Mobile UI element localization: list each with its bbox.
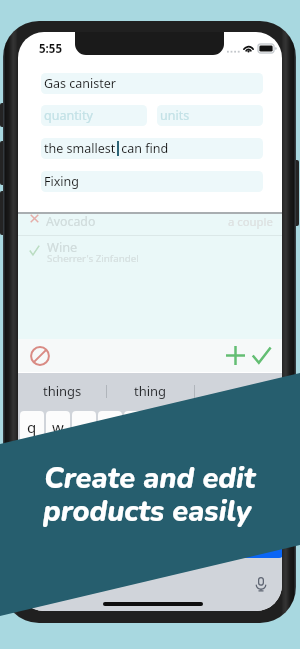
staticText: products easily	[43, 492, 252, 532]
staticText: n	[196, 495, 206, 515]
staticText: Create and edit	[44, 459, 256, 499]
staticText: d	[92, 456, 102, 476]
button[interactable]: units	[157, 105, 263, 126]
staticText: e	[80, 417, 89, 437]
button[interactable]: c	[111, 489, 135, 520]
button[interactable]: Confirm	[250, 339, 272, 372]
staticText: k	[223, 456, 232, 476]
button[interactable]: x	[85, 489, 109, 520]
button[interactable]: b	[163, 489, 187, 520]
staticText: x	[93, 495, 101, 515]
staticText: Fixing	[44, 173, 79, 190]
button[interactable]: h	[163, 450, 187, 481]
button[interactable]: f	[111, 450, 135, 481]
staticText: l	[251, 456, 255, 476]
button[interactable]: n	[189, 489, 213, 520]
button[interactable]: v	[137, 489, 161, 520]
button[interactable]: the smallest	[41, 138, 263, 159]
staticText: units	[160, 107, 190, 124]
staticText: m	[220, 495, 235, 515]
button[interactable]: j	[189, 450, 213, 481]
button[interactable]: e	[72, 411, 96, 442]
button[interactable]: things	[18, 376, 106, 406]
button[interactable]: Fixing	[41, 171, 263, 192]
staticText: g	[144, 456, 154, 476]
button[interactable]: Return	[229, 531, 282, 558]
button[interactable]: r	[98, 411, 122, 442]
button[interactable]: Wine	[18, 236, 282, 268]
staticText: thing	[134, 382, 167, 400]
staticText: f	[120, 456, 126, 476]
button[interactable]: g	[137, 450, 161, 481]
staticText: b	[170, 495, 180, 515]
button[interactable]: Add	[224, 339, 246, 372]
button[interactable]: d	[85, 450, 109, 481]
staticText: z	[67, 495, 75, 515]
staticText: a	[41, 456, 50, 476]
button[interactable]: l	[241, 450, 265, 481]
button[interactable]: quantity	[41, 105, 147, 126]
button[interactable]: q	[20, 411, 44, 442]
staticText: can find	[118, 140, 169, 157]
staticText: 5:55	[39, 41, 62, 57]
staticText: h	[170, 456, 180, 476]
staticText: w	[52, 417, 64, 437]
button[interactable]: Cancel	[30, 339, 72, 372]
button[interactable]: k	[215, 450, 239, 481]
staticText: the smallest	[44, 140, 116, 157]
button[interactable]: a	[33, 450, 57, 481]
staticText: c	[119, 495, 127, 515]
button[interactable]: thing	[107, 376, 194, 406]
button[interactable]: Gas canister	[41, 73, 263, 94]
staticText: a couple	[228, 214, 273, 229]
button[interactable]: Voice input	[253, 576, 269, 592]
staticText: things	[43, 382, 82, 400]
staticText: v	[145, 495, 153, 515]
staticText: s	[67, 456, 75, 476]
staticText: r	[107, 417, 114, 437]
staticText: quantity	[44, 107, 93, 124]
staticText: Gas canister	[44, 75, 117, 92]
staticText: Scherrer's Zinfandel	[47, 252, 139, 265]
button[interactable]: z	[59, 489, 83, 520]
button[interactable]	[195, 376, 282, 406]
button[interactable]: t	[124, 411, 148, 442]
button[interactable]: m	[215, 489, 239, 520]
staticText: Avocado	[46, 213, 96, 230]
staticText: q	[27, 417, 37, 437]
staticText: Wine	[47, 238, 78, 255]
button[interactable]: s	[59, 450, 83, 481]
button[interactable]: w	[46, 411, 70, 442]
button[interactable]: Avocado	[18, 212, 282, 235]
